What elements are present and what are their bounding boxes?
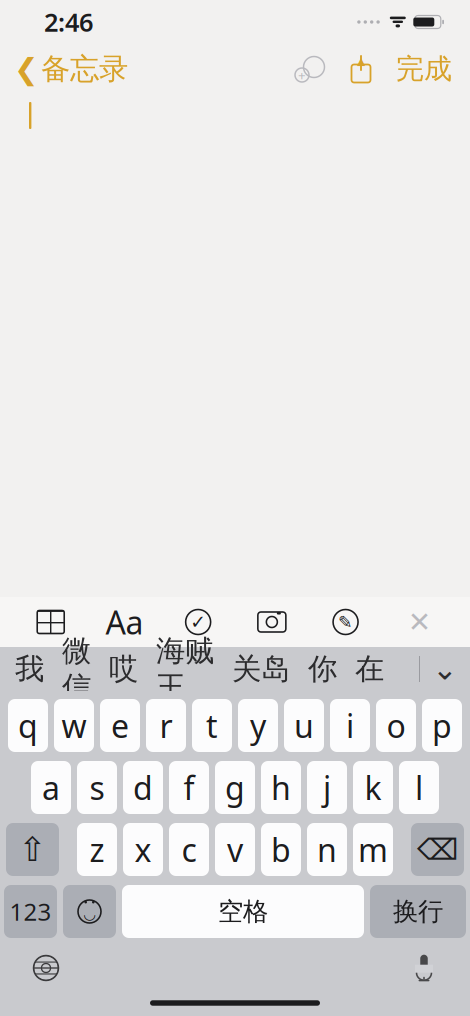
button[interactable]: c	[169, 823, 209, 876]
button[interactable]: y	[238, 699, 278, 752]
button[interactable]: o	[376, 699, 416, 752]
staticText: g	[225, 766, 245, 809]
staticText: p	[432, 704, 452, 747]
button[interactable]: Close	[396, 602, 442, 642]
staticText: i	[346, 704, 354, 747]
staticText: 哎	[109, 651, 138, 687]
staticText: ⌄	[432, 652, 458, 686]
staticText: r	[159, 704, 172, 747]
button[interactable]: v	[215, 823, 255, 876]
staticText: ❮	[14, 52, 39, 86]
staticText: 换行	[393, 896, 443, 927]
staticText: t	[206, 704, 218, 747]
staticText: j	[323, 766, 331, 809]
staticText: 123	[9, 896, 51, 927]
button[interactable]: 哎	[100, 648, 147, 690]
button[interactable]: w	[54, 699, 94, 752]
button[interactable]: Delete	[411, 823, 464, 876]
button[interactable]: Shift	[6, 823, 59, 876]
button[interactable]: t	[192, 699, 232, 752]
staticText: 完成	[396, 52, 452, 86]
staticText: 在	[355, 651, 384, 687]
staticText: +	[298, 66, 306, 84]
button[interactable]: j	[307, 761, 347, 814]
staticText: k	[364, 766, 381, 809]
button[interactable]: i	[330, 699, 370, 752]
staticText: 你	[308, 651, 337, 687]
button[interactable]: z	[77, 823, 117, 876]
staticText: ◡	[84, 905, 95, 922]
staticText: 关岛	[232, 651, 290, 687]
button[interactable]: u	[284, 699, 324, 752]
button[interactable]: 123	[4, 885, 57, 938]
staticText: e	[111, 704, 129, 747]
button[interactable]: b	[261, 823, 301, 876]
staticText: ✕	[408, 606, 431, 638]
button[interactable]: 你	[299, 648, 346, 690]
staticText: Aa	[105, 601, 143, 643]
button[interactable]: 微信	[53, 648, 100, 690]
button[interactable]: a	[31, 761, 71, 814]
button[interactable]: ❮	[14, 45, 128, 93]
button[interactable]: m	[353, 823, 393, 876]
staticText: o	[386, 704, 405, 747]
button[interactable]: f	[169, 761, 209, 814]
staticText: s	[89, 766, 104, 809]
staticText: 备忘录	[41, 51, 128, 87]
staticText: z	[89, 828, 104, 871]
staticText: ✓	[190, 611, 206, 633]
button[interactable]: Emoji	[63, 885, 116, 938]
staticText: ▲	[357, 55, 365, 67]
button[interactable]: 空格	[122, 885, 364, 938]
staticText: c	[181, 828, 196, 871]
staticText: n	[317, 828, 337, 871]
staticText: 空格	[218, 896, 268, 927]
staticText: d	[133, 766, 153, 809]
button[interactable]: Camera	[249, 602, 295, 642]
button[interactable]: Markup	[323, 602, 369, 642]
button[interactable]: l	[399, 761, 439, 814]
button[interactable]: More Candidates	[420, 648, 470, 690]
button[interactable]: r	[146, 699, 186, 752]
button[interactable]: 海贼王	[147, 648, 223, 690]
button[interactable]: Share	[350, 53, 372, 85]
button[interactable]: Table	[28, 602, 74, 642]
button[interactable]: q	[8, 699, 48, 752]
staticText: h	[271, 766, 291, 809]
button[interactable]: n	[307, 823, 347, 876]
staticText: v	[227, 828, 243, 871]
button[interactable]: 完成	[396, 46, 452, 92]
staticText: ⌫	[417, 833, 458, 866]
button[interactable]: Format	[101, 602, 147, 642]
staticText: 海贼王	[156, 633, 214, 705]
button[interactable]: h	[261, 761, 301, 814]
staticText: q	[18, 704, 38, 747]
button[interactable]: Checklist	[175, 602, 221, 642]
button[interactable]: 换行	[370, 885, 466, 938]
button[interactable]: Add People	[292, 51, 326, 87]
button[interactable]: 我	[6, 648, 53, 690]
staticText: y	[250, 704, 266, 747]
staticText: u	[294, 704, 314, 747]
staticText: w	[61, 704, 86, 747]
staticText: m	[358, 828, 388, 871]
staticText: a	[42, 766, 60, 809]
staticText: 2:46	[44, 5, 93, 39]
button[interactable]: Switch Keyboard	[24, 949, 68, 987]
staticText: ✎	[338, 612, 353, 632]
button[interactable]: s	[77, 761, 117, 814]
button[interactable]: p	[422, 699, 462, 752]
staticText: 微信	[62, 633, 91, 705]
button[interactable]: e	[100, 699, 140, 752]
button[interactable]: x	[123, 823, 163, 876]
button[interactable]: d	[123, 761, 163, 814]
button[interactable]: g	[215, 761, 255, 814]
button[interactable]: 关岛	[223, 648, 299, 690]
staticText: f	[183, 766, 194, 809]
button[interactable]: k	[353, 761, 393, 814]
button[interactable]: 在	[346, 648, 393, 690]
staticText: x	[134, 828, 151, 871]
button[interactable]: Dictate	[402, 949, 446, 987]
staticText: l	[415, 766, 423, 809]
staticText: ⇧	[18, 831, 46, 868]
